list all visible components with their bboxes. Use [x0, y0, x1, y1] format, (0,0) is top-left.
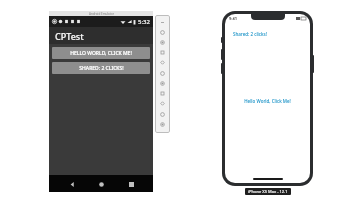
button[interactable]: Emulator control 4: [159, 70, 166, 77]
button[interactable]: SHARED: 2 CLICKS!: [52, 62, 150, 74]
button[interactable]: Emulator control 5: [159, 80, 166, 87]
button[interactable]: Emulator control 1: [159, 39, 166, 46]
button[interactable]: Emulator control 7: [159, 100, 166, 107]
button[interactable]: Emulator control 9: [159, 121, 166, 128]
button[interactable]: Recent apps: [124, 177, 138, 191]
button[interactable]: HELLO WORLD, CLICK ME!: [52, 47, 150, 59]
button[interactable]: Emulator control 3: [159, 59, 166, 66]
staticText: iPhone XS Max - 12.1: [248, 189, 288, 194]
staticText: HELLO WORLD, CLICK ME!: [70, 50, 132, 57]
button[interactable]: Home: [94, 177, 108, 191]
staticText: 9:41: [229, 16, 237, 21]
button[interactable]: Emulator control 6: [159, 90, 166, 97]
staticText: 5:32: [138, 18, 150, 26]
staticText: SHARED: 2 CLICKS!: [79, 65, 124, 72]
button[interactable]: Emulator control 8: [159, 111, 166, 118]
staticText: Shared: 2 clicks!: [233, 31, 267, 37]
staticText: Android Emulator: [89, 12, 114, 16]
button[interactable]: Shared: 2 clicks!: [233, 31, 267, 37]
button[interactable]: Emulator control 2: [159, 49, 166, 56]
staticText: CPTest: [55, 30, 84, 42]
staticText: Hello World, Click Me!: [244, 98, 291, 104]
button[interactable]: Emulator control 0: [159, 29, 166, 36]
button[interactable]: Back: [65, 177, 79, 191]
button[interactable]: Hello World, Click Me!: [244, 98, 291, 104]
